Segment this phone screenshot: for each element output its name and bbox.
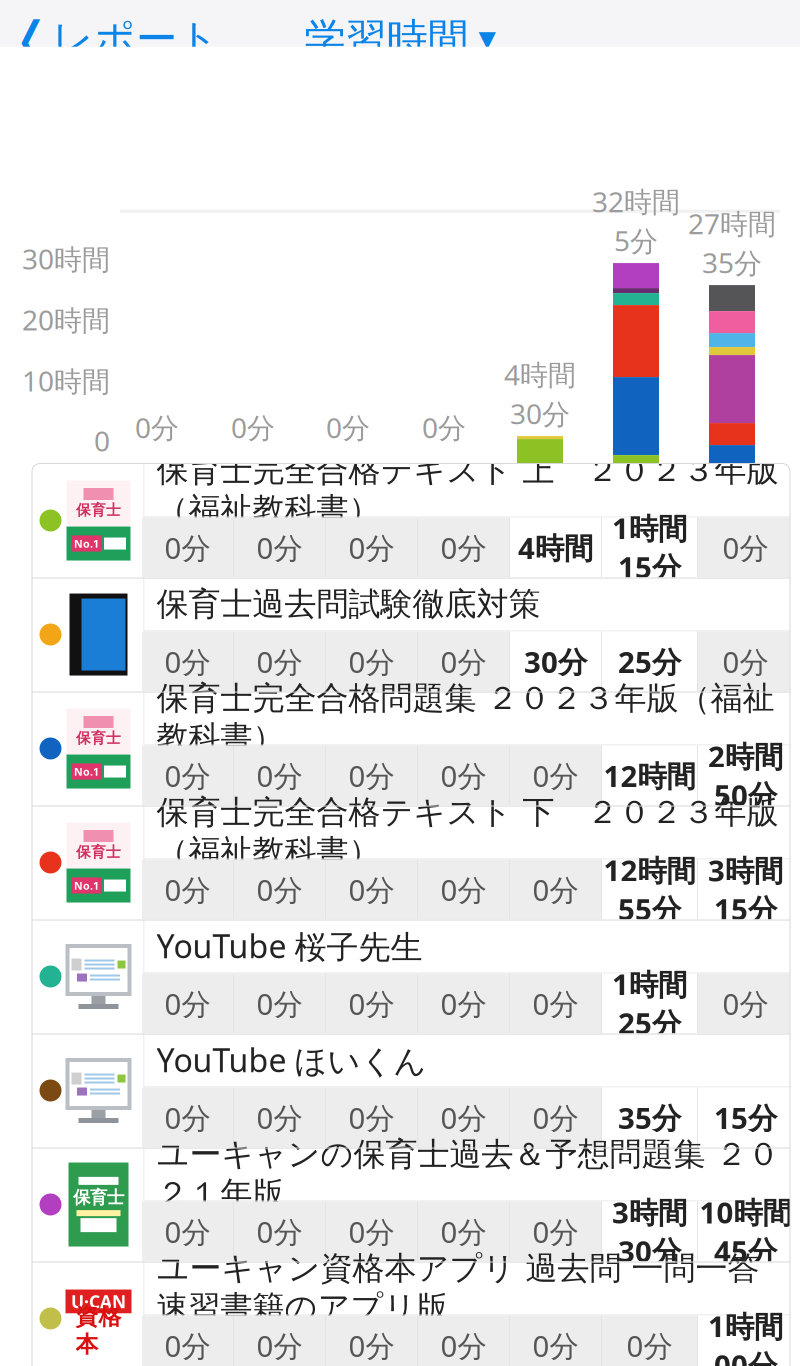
staticText: 0分 bbox=[164, 870, 210, 909]
button[interactable]: ❬ bbox=[0, 4, 219, 74]
staticText: 0分 bbox=[440, 870, 486, 909]
staticText: 0分 bbox=[164, 984, 210, 1023]
staticText: 保育士 bbox=[76, 501, 121, 519]
staticText: 27時間 bbox=[688, 205, 776, 242]
staticText: ▼ bbox=[478, 26, 495, 52]
staticText: 0分 bbox=[440, 1212, 486, 1251]
button[interactable]: 学習時間 bbox=[304, 4, 495, 74]
staticText: 25分 bbox=[618, 1003, 681, 1042]
staticText: 20時間 bbox=[22, 301, 110, 338]
staticText: 0 bbox=[94, 422, 110, 459]
staticText: 3時間 bbox=[612, 1192, 687, 1231]
button[interactable]: 保育士 bbox=[32, 1147, 790, 1261]
staticText: 0分 bbox=[256, 1326, 302, 1365]
staticText: 0分 bbox=[722, 528, 768, 567]
staticText: 0分 bbox=[348, 1326, 394, 1365]
staticText: 0分 bbox=[348, 642, 394, 681]
staticText: 保育士過去問試験徹底対策 bbox=[156, 584, 540, 624]
staticText: 0分 bbox=[256, 1212, 302, 1251]
staticText: 保育士完全合格問題集 ２０２３年版（福祉教科書） bbox=[156, 679, 774, 757]
staticText: 0分 bbox=[348, 1098, 394, 1137]
button[interactable]: 保育士 bbox=[32, 805, 790, 919]
staticText: ❬ bbox=[11, 12, 51, 66]
staticText: YouTube 桜子先生 bbox=[156, 925, 422, 967]
staticText: 0分 bbox=[422, 409, 466, 446]
staticText: 32時間 bbox=[592, 183, 680, 220]
staticText: 0分 bbox=[348, 870, 394, 909]
button[interactable]: YouTube 桜子先生 bbox=[32, 919, 790, 1033]
staticText: 30分 bbox=[524, 642, 587, 681]
staticText: レポート bbox=[52, 14, 219, 64]
staticText: 3時間 bbox=[708, 850, 783, 889]
button[interactable]: 保育士 bbox=[32, 691, 790, 805]
staticText: 0分 bbox=[532, 1326, 578, 1365]
staticText: 保育士 bbox=[73, 1187, 124, 1208]
staticText: 0分 bbox=[164, 756, 210, 795]
staticText: 0分 bbox=[440, 1098, 486, 1137]
staticText: 00分 bbox=[714, 1345, 777, 1366]
staticText: 15分 bbox=[714, 889, 777, 928]
staticText: 15分 bbox=[618, 547, 681, 586]
staticText: 0分 bbox=[532, 1212, 578, 1251]
staticText: YouTube ほいくん bbox=[156, 1039, 426, 1081]
staticText: 30分 bbox=[510, 395, 570, 432]
staticText: 5分 bbox=[614, 222, 658, 259]
staticText: 0分 bbox=[440, 984, 486, 1023]
staticText: 保育士 bbox=[76, 843, 121, 861]
staticText: 0分 bbox=[135, 409, 179, 446]
staticText: 1時間 bbox=[612, 964, 687, 1003]
button[interactable]: 保育士 bbox=[32, 463, 790, 577]
staticText: 35分 bbox=[702, 244, 762, 281]
staticText: 35分 bbox=[618, 1098, 681, 1137]
staticText: 0分 bbox=[256, 642, 302, 681]
staticText: 1時間 bbox=[708, 1306, 783, 1345]
staticText: 0分 bbox=[440, 528, 486, 567]
staticText: 0分 bbox=[532, 870, 578, 909]
button[interactable]: YouTube ほいくん bbox=[32, 1033, 790, 1147]
staticText: 0分 bbox=[532, 984, 578, 1023]
staticText: 30分 bbox=[618, 1231, 681, 1270]
staticText: 10時間 bbox=[699, 1192, 791, 1231]
staticText: 45分 bbox=[714, 1231, 777, 1270]
staticText: 25分 bbox=[618, 642, 681, 681]
staticText: 55分 bbox=[618, 889, 681, 928]
staticText: 0分 bbox=[256, 870, 302, 909]
staticText: 11月 bbox=[414, 456, 474, 493]
staticText: 0分 bbox=[626, 1326, 672, 1365]
staticText: 2月 bbox=[710, 469, 754, 506]
staticText: 0分 bbox=[532, 756, 578, 795]
button[interactable]: U·CAN bbox=[32, 1261, 790, 1366]
staticText: No.1 bbox=[74, 878, 99, 893]
staticText: 12月 bbox=[510, 469, 570, 506]
staticText: 0分 bbox=[440, 1326, 486, 1365]
staticText: 50分 bbox=[714, 775, 777, 814]
staticText: 12時間 bbox=[603, 850, 695, 889]
staticText: No.1 bbox=[74, 536, 99, 551]
staticText: 1時間 bbox=[612, 508, 687, 547]
staticText: 2時間 bbox=[708, 736, 783, 775]
button[interactable]: 保育士過去問試験徹底対策 bbox=[32, 577, 790, 691]
staticText: 8月 bbox=[135, 456, 179, 493]
staticText: 0分 bbox=[164, 1326, 210, 1365]
staticText: 4時間 bbox=[518, 528, 593, 567]
staticText: 12時間 bbox=[603, 756, 695, 795]
staticText: 0分 bbox=[164, 528, 210, 567]
staticText: 0分 bbox=[256, 756, 302, 795]
staticText: 0分 bbox=[164, 1098, 210, 1137]
staticText: 10月 bbox=[318, 456, 378, 493]
staticText: 0分 bbox=[348, 528, 394, 567]
staticText: 15分 bbox=[714, 1098, 777, 1137]
staticText: 0分 bbox=[326, 409, 370, 446]
staticText: 学習時間 bbox=[304, 14, 468, 64]
staticText: 30時間 bbox=[22, 240, 110, 277]
staticText: 0分 bbox=[164, 642, 210, 681]
staticText: 0分 bbox=[256, 528, 302, 567]
staticText: 0分 bbox=[440, 756, 486, 795]
staticText: 0分 bbox=[348, 756, 394, 795]
staticText: ユーキャン資格本アプリ 過去問 一問一答 速習書籍のアプリ版 bbox=[156, 1249, 759, 1327]
staticText: 9月 bbox=[231, 456, 275, 493]
staticText: U·CAN bbox=[71, 1290, 126, 1313]
staticText: 10時間 bbox=[22, 362, 110, 399]
staticText: ユーキャンの保育士過去＆予想問題集 ２０２１年版 bbox=[156, 1135, 779, 1213]
staticText: 1月 bbox=[614, 469, 658, 506]
